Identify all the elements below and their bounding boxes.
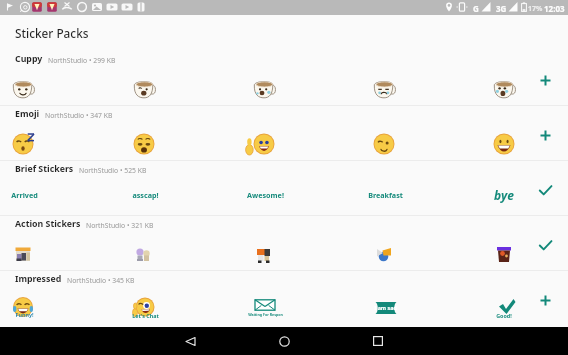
staticText: I am sad — [374, 304, 397, 311]
staticText: Good! — [496, 312, 512, 319]
button[interactable]: Impressed — [0, 271, 568, 325]
button[interactable]: Recents — [364, 327, 392, 355]
button[interactable]: Home — [270, 327, 298, 355]
staticText: NorthStudio • 299 KB — [48, 56, 116, 65]
button[interactable]: Emoji — [0, 106, 568, 160]
button[interactable]: Cuppy — [0, 51, 568, 105]
staticText: Sticker Packs — [15, 25, 89, 41]
staticText: Let's Chat — [132, 312, 159, 319]
staticText: Arrived — [11, 190, 38, 200]
staticText: Emoji — [15, 108, 40, 120]
button[interactable]: Action Stickers — [0, 216, 568, 270]
button[interactable]: Brief Stickers — [0, 161, 568, 215]
staticText: Funny! — [15, 311, 34, 318]
staticText: Breakfast — [368, 190, 403, 200]
staticText: asscap! — [132, 190, 159, 200]
staticText: Waiting For Respon — [248, 312, 283, 317]
button[interactable]: Pack installed — [535, 235, 555, 255]
staticText: Awesome! — [247, 190, 284, 200]
staticText: Action Stickers — [15, 218, 81, 230]
staticText: NorthStudio • 345 KB — [67, 276, 135, 285]
button[interactable]: Add sticker pack — [535, 125, 555, 145]
button[interactable]: Back — [176, 327, 204, 355]
button[interactable]: Pack installed — [535, 180, 555, 200]
staticText: NorthStudio • 347 KB — [45, 111, 113, 120]
staticText: bye — [494, 187, 514, 203]
button[interactable]: Add sticker pack — [535, 70, 555, 90]
staticText: Cuppy — [15, 53, 43, 65]
staticText: 3G — [496, 3, 507, 14]
staticText: 17% — [528, 4, 543, 14]
staticText: Impressed — [15, 273, 62, 285]
staticText: NorthStudio • 321 KB — [86, 221, 154, 230]
staticText: 12:03 — [544, 3, 565, 14]
staticText: NorthStudio • 525 KB — [79, 166, 147, 175]
staticText: Brief Stickers — [15, 163, 74, 175]
staticText: G — [473, 3, 479, 14]
button[interactable]: Add sticker pack — [535, 290, 555, 310]
